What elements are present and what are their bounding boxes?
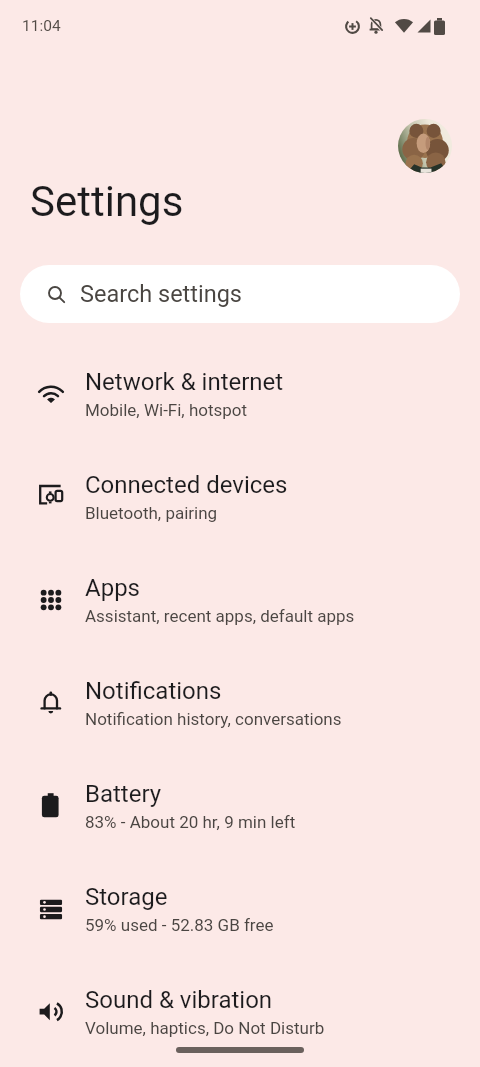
staticText: 59% used - 52.83 GB free bbox=[85, 915, 274, 935]
staticText: Apps bbox=[85, 574, 140, 602]
staticText: 83% - About 20 hr, 9 min left bbox=[85, 812, 296, 832]
button[interactable]: Network & internet bbox=[0, 342, 480, 445]
button[interactable]: Battery bbox=[0, 754, 480, 857]
staticText: Notifications bbox=[85, 677, 222, 705]
staticText: Mobile, Wi-Fi, hotspot bbox=[85, 400, 248, 420]
staticText: 11:04 bbox=[22, 17, 61, 35]
button[interactable]: Search settings bbox=[20, 265, 460, 323]
button[interactable]: Connected devices bbox=[0, 445, 480, 548]
staticText: Bluetooth, pairing bbox=[85, 503, 218, 523]
staticText: Sound & vibration bbox=[85, 986, 273, 1014]
staticText: Assistant, recent apps, default apps bbox=[85, 606, 355, 626]
button[interactable] bbox=[398, 119, 452, 173]
staticText: Settings bbox=[30, 177, 184, 226]
staticText: Network & internet bbox=[85, 368, 284, 396]
button[interactable]: Notifications bbox=[0, 651, 480, 754]
button[interactable]: Apps bbox=[0, 548, 480, 651]
staticText: Storage bbox=[85, 883, 168, 911]
staticText: Connected devices bbox=[85, 471, 288, 499]
staticText: Volume, haptics, Do Not Disturb bbox=[85, 1018, 325, 1038]
button[interactable]: Sound & vibration bbox=[0, 960, 480, 1063]
button[interactable]: Storage bbox=[0, 857, 480, 960]
staticText: Search settings bbox=[80, 280, 242, 308]
staticText: Notification history, conversations bbox=[85, 709, 342, 729]
staticText: Battery bbox=[85, 780, 162, 808]
